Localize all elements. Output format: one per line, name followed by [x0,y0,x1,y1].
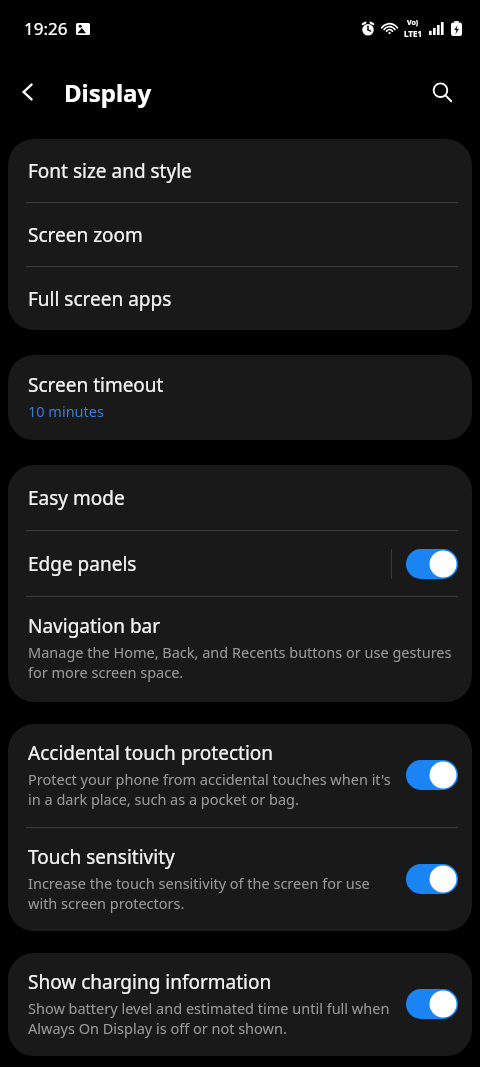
staticText: 10 minutes [28,401,104,421]
button[interactable]: Screen zoom [8,203,472,266]
staticText: Touch sensitivity [28,844,175,870]
button[interactable]: Easy mode [8,465,472,530]
button[interactable]: Full screen apps [8,267,472,330]
staticText: Increase the touch sensitivity of the sc… [28,873,394,913]
staticText: LTE1 [404,28,422,39]
button[interactable]: Toggle [406,864,458,894]
button[interactable]: Toggle [406,549,458,579]
button[interactable]: Touch sensitivity [8,828,472,931]
staticText: Screen timeout [28,372,164,398]
button[interactable]: Screen timeout [8,355,472,440]
staticText: Display [64,76,152,109]
button[interactable]: Toggle [406,989,458,1019]
button[interactable]: Back [0,64,56,120]
staticText: Navigation bar [28,613,161,639]
staticText: Edge panels [28,551,137,577]
button[interactable]: Font size and style [8,139,472,202]
staticText: Font size and style [28,158,192,184]
button[interactable]: Edge panels [8,531,472,596]
staticText: Screen zoom [28,222,143,248]
staticText: Show battery level and estimated time un… [28,998,394,1038]
staticText: Vo) [407,18,419,28]
staticText: Full screen apps [28,286,172,312]
staticText: Show charging information [28,969,272,995]
button[interactable]: Navigation bar [8,597,472,702]
staticText: Easy mode [28,485,125,511]
staticText: Protect your phone from accidental touch… [28,769,394,809]
staticText: 19:26 [24,17,68,40]
button[interactable]: Accidental touch protection [8,724,472,827]
staticText: Manage the Home, Back, and Recents butto… [28,642,452,682]
staticText: Accidental touch protection [28,740,274,766]
button[interactable]: Toggle [406,760,458,790]
button[interactable]: Search [418,68,466,116]
button[interactable]: Show charging information [8,953,472,1056]
